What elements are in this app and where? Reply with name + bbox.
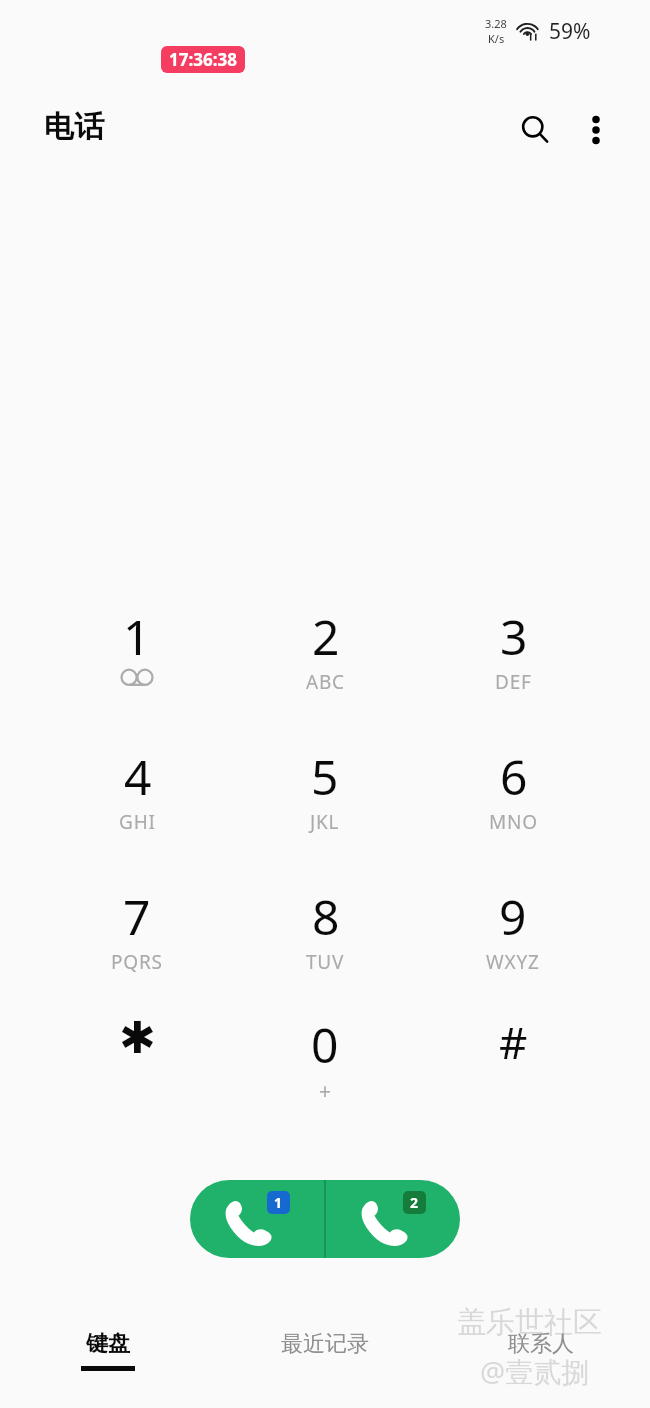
staticText: JKL [310,809,340,835]
button[interactable]: 3 [420,604,606,728]
staticText: K/s [488,31,505,46]
button[interactable]: 0 [232,1012,418,1136]
button[interactable]: 4 [44,744,230,868]
staticText: 59% [549,17,591,46]
button[interactable]: 最近记录 [225,1330,425,1396]
button[interactable]: Call with SIM 2 [326,1180,460,1258]
staticText: PQRS [111,949,163,975]
button[interactable]: 5 [232,744,418,868]
staticText: 7 [123,884,151,949]
staticText: 2 [410,1193,419,1212]
button[interactable]: Search [509,104,561,156]
staticText: @壹贰捌 [480,1352,590,1390]
button[interactable]: ✱ [44,1012,230,1136]
staticText: WXYZ [486,949,540,975]
staticText: 2 [312,604,340,669]
staticText: TUV [306,949,345,975]
staticText: 1 [274,1193,283,1212]
button[interactable]: 1 [44,604,230,728]
button[interactable]: 9 [420,884,606,1008]
button[interactable]: 6 [420,744,606,868]
button[interactable]: 7 [44,884,230,1008]
staticText: 电话 [44,108,104,146]
staticText: 最近记录 [281,1330,369,1358]
staticText: 键盘 [86,1330,130,1358]
staticText: 1 [123,604,151,669]
staticText: ✱ [119,1012,156,1063]
button[interactable]: # [420,1012,606,1136]
staticText: DEF [495,669,532,695]
staticText: 4 [124,744,152,809]
button[interactable]: 联系人 [441,1330,641,1396]
staticText: 联系人 [508,1330,574,1358]
staticText: # [499,1012,528,1072]
button[interactable]: Call with SIM 1 [190,1180,324,1258]
staticText: 3 [500,604,528,669]
button[interactable]: 键盘 [8,1330,208,1396]
staticText: + [319,1077,332,1106]
staticText: 5 [311,744,339,809]
staticText: ABC [306,669,345,695]
staticText: 6 [500,744,528,809]
staticText: 9 [499,884,527,949]
button[interactable]: More options [570,104,622,156]
staticText: 盖乐世社区 [457,1304,602,1341]
button[interactable]: 8 [232,884,418,1008]
staticText: 17:36:38 [169,48,237,71]
staticText: MNO [489,809,538,835]
staticText: 3.28 [485,16,507,31]
staticText: 0 [311,1012,339,1077]
staticText: GHI [119,809,156,835]
staticText: 8 [312,884,340,949]
button[interactable]: 2 [232,604,418,728]
